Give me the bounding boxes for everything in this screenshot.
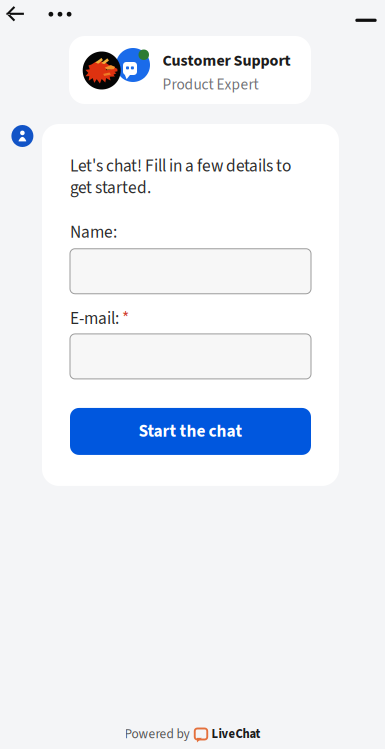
button[interactable]: Minimize (349, 5, 382, 35)
staticText: * (122, 306, 129, 331)
button[interactable]: Customer Support (69, 36, 311, 104)
staticText: Name: (70, 220, 117, 245)
button[interactable]: Start the chat (70, 408, 311, 455)
button[interactable]: Back (0, 0, 31, 29)
staticText: Let's chat! Fill in a few details to get… (70, 154, 291, 200)
staticText: Customer Support (163, 49, 291, 72)
staticText: LiveChat (211, 725, 260, 743)
staticText: Powered by (124, 724, 189, 743)
staticText: Product Expert (163, 74, 259, 95)
staticText: Start the chat (138, 419, 242, 444)
staticText: E-mail: (70, 306, 119, 331)
button[interactable]: More options (43, 0, 76, 29)
